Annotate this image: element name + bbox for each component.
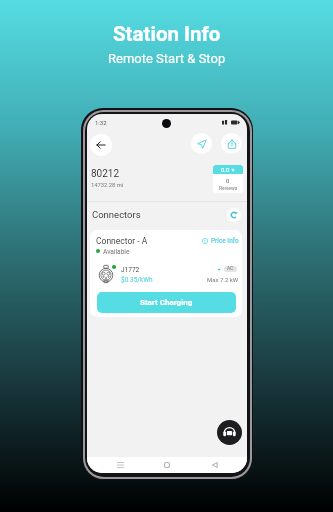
button[interactable]: Recents [105, 458, 135, 472]
button[interactable]: Home [152, 458, 182, 472]
staticText: 0.0 [221, 166, 230, 173]
button[interactable]: Back [200, 458, 230, 472]
staticText: Connectors [92, 209, 141, 220]
button[interactable]: Refresh [227, 208, 241, 222]
staticText: Connector - A [96, 236, 148, 246]
button[interactable]: 0.0 [213, 165, 243, 193]
staticText: 1:32 [95, 119, 107, 126]
staticText: AC [227, 266, 234, 272]
button[interactable]: Support chat [217, 420, 242, 445]
staticText: Remote Start & Stop [108, 51, 226, 66]
button[interactable]: Price Info [202, 237, 239, 245]
staticText: Start Charging [140, 298, 193, 307]
staticText: $0.35/kWh [121, 276, 153, 284]
staticText: 80212 [91, 168, 120, 180]
staticText: Available [103, 248, 130, 256]
staticText: 14732.28 mi [91, 182, 124, 189]
button[interactable]: Back [90, 134, 112, 156]
staticText: J1772 [121, 266, 140, 274]
button[interactable]: Navigate [191, 133, 212, 154]
staticText: Station Info [113, 22, 221, 46]
button[interactable]: Share [221, 133, 242, 154]
button[interactable]: Start Charging [97, 292, 236, 313]
staticText: Reviews [219, 185, 238, 191]
staticText: 0 [226, 177, 230, 184]
staticText: Max 7.2 kW [207, 276, 239, 283]
staticText: Price Info [211, 237, 239, 245]
